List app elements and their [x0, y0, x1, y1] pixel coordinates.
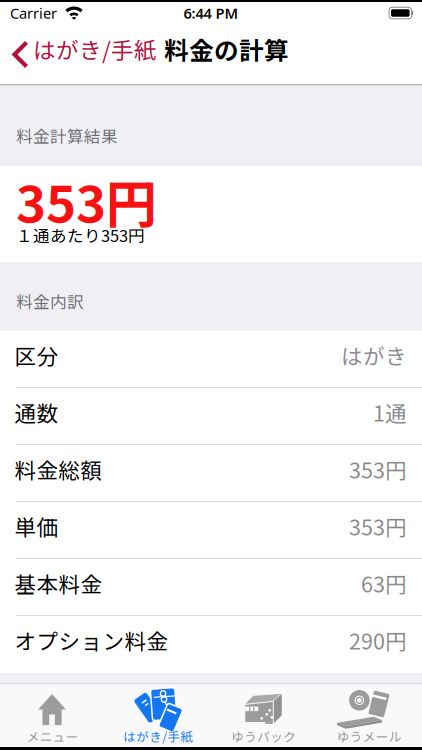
- staticText: 353円: [16, 164, 157, 237]
- staticText: オプション料金: [14, 625, 168, 656]
- staticText: 290円: [349, 625, 407, 656]
- button[interactable]: メニュー: [0, 684, 105, 747]
- staticText: １通あたり353円: [16, 223, 145, 247]
- staticText: 353円: [349, 511, 407, 542]
- staticText: 353円: [349, 454, 407, 485]
- staticText: 1通: [373, 397, 407, 428]
- staticText: 料金内訳: [16, 289, 84, 313]
- staticText: 料金総額: [14, 454, 102, 485]
- staticText: ゆうメール: [337, 727, 402, 745]
- staticText: メニュー: [27, 727, 79, 745]
- staticText: 基本料金: [14, 568, 102, 599]
- staticText: 料金計算結果: [16, 124, 118, 147]
- staticText: ゆうパック: [231, 727, 296, 745]
- button[interactable]: ゆうメール: [316, 684, 422, 747]
- button[interactable]: はがき/手紙: [0, 33, 157, 65]
- staticText: 単価: [14, 511, 58, 542]
- button[interactable]: ゆうパック: [211, 684, 316, 747]
- staticText: 通数: [14, 397, 58, 428]
- staticText: 6:44 PM: [183, 3, 238, 23]
- staticText: 料金の計算: [164, 31, 289, 67]
- staticText: はがき/手紙: [123, 727, 193, 745]
- staticText: 63円: [361, 568, 407, 599]
- staticText: はがき: [341, 340, 407, 371]
- staticText: はがき/手紙: [33, 33, 157, 65]
- button[interactable]: はがき/手紙: [105, 684, 211, 747]
- staticText: Carrier: [10, 3, 57, 23]
- staticText: 区分: [14, 340, 58, 371]
